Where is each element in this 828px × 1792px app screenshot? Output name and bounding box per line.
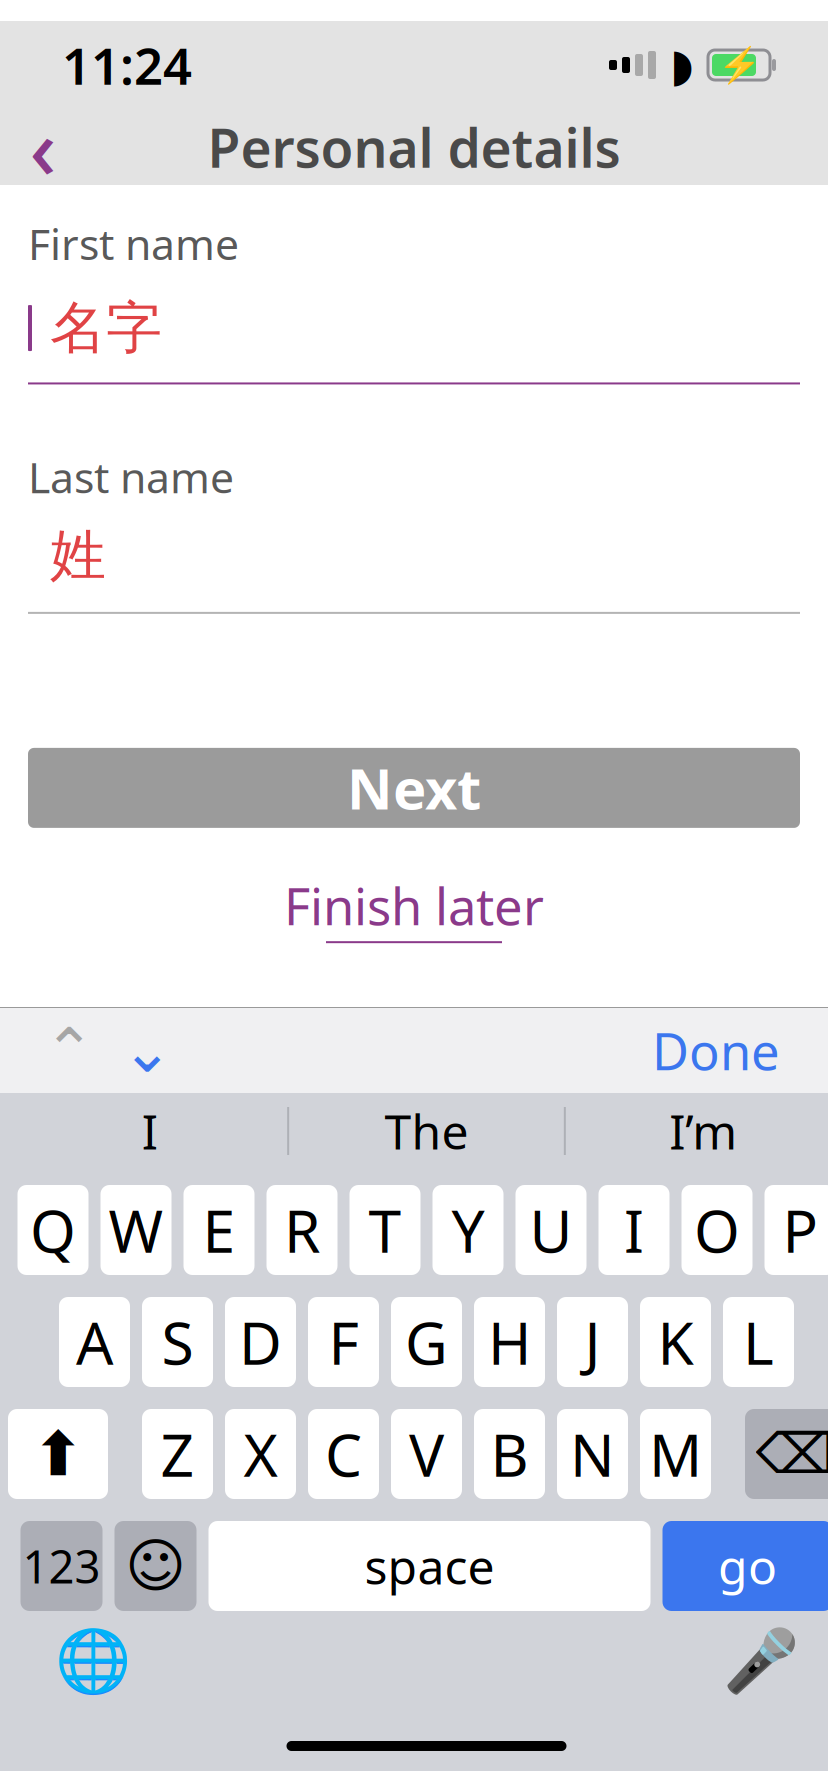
button[interactable]: I’m [566, 1093, 828, 1169]
staticText: Last name [28, 448, 234, 505]
staticText: ☺ [125, 1533, 186, 1599]
button[interactable]: Y [432, 1185, 503, 1275]
button[interactable]: J [557, 1297, 628, 1387]
staticText: ‹ [29, 92, 56, 202]
button[interactable]: S [142, 1297, 213, 1387]
button[interactable]: Finish later [0, 828, 828, 963]
button[interactable]: P [764, 1185, 828, 1275]
button[interactable]: Next field [108, 1011, 186, 1089]
button[interactable]: N [557, 1409, 628, 1499]
button[interactable]: F [308, 1297, 379, 1387]
button[interactable]: space [208, 1521, 650, 1611]
button[interactable]: 123 [20, 1521, 102, 1611]
button[interactable]: B [474, 1409, 545, 1499]
staticText: Finish later [284, 872, 544, 939]
staticText: O [694, 1191, 740, 1269]
staticText: R [284, 1191, 320, 1269]
staticText: 11:24 [62, 31, 192, 99]
button[interactable]: Next [28, 748, 800, 828]
button[interactable]: The [289, 1093, 564, 1169]
staticText: 🎤 [722, 1626, 798, 1696]
button[interactable]: W [100, 1185, 171, 1275]
staticText: D [239, 1303, 282, 1381]
button[interactable]: O [681, 1185, 752, 1275]
staticText: 名字 [50, 294, 162, 362]
staticText: Personal details [207, 112, 620, 182]
staticText: First name [28, 215, 239, 272]
staticText: J [584, 1303, 600, 1381]
button[interactable]: V [391, 1409, 462, 1499]
staticText: 🌐 [54, 1626, 130, 1696]
button[interactable]: Done [640, 1011, 792, 1089]
button[interactable]: G [391, 1297, 462, 1387]
staticText: ⌫ [755, 1422, 828, 1486]
staticText: T [368, 1191, 401, 1269]
staticText: K [657, 1303, 693, 1381]
button[interactable]: U [515, 1185, 586, 1275]
button[interactable]: L [723, 1297, 794, 1387]
staticText: The [384, 1099, 468, 1163]
button[interactable]: X [225, 1409, 296, 1499]
button[interactable]: Shift [8, 1409, 108, 1499]
staticText: ⌄ [121, 1016, 172, 1085]
button[interactable]: A [59, 1297, 130, 1387]
staticText: L [743, 1303, 774, 1381]
staticText: F [328, 1303, 358, 1381]
staticText: B [490, 1415, 528, 1493]
staticText: X [243, 1415, 277, 1493]
button[interactable]: Change keyboard [52, 1621, 132, 1701]
staticText: I’m [669, 1099, 737, 1163]
staticText: ⌃ [43, 1016, 94, 1085]
button[interactable]: D [225, 1297, 296, 1387]
staticText: 姓 [50, 521, 106, 590]
staticText: H [488, 1303, 531, 1381]
button[interactable]: go [662, 1521, 828, 1611]
button[interactable]: Dictation [720, 1621, 800, 1701]
staticText: Y [451, 1191, 484, 1269]
staticText: Done [652, 1017, 780, 1084]
staticText: A [76, 1303, 113, 1381]
button[interactable]: Q [17, 1185, 88, 1275]
staticText: W [108, 1191, 163, 1269]
staticText: Z [160, 1415, 194, 1493]
staticText: N [570, 1415, 615, 1493]
button[interactable]: C [308, 1409, 379, 1499]
staticText: Next [347, 751, 481, 825]
staticText: I [142, 1099, 158, 1163]
staticText: C [325, 1415, 362, 1493]
button[interactable]: E [183, 1185, 254, 1275]
staticText: ◗ [670, 39, 694, 91]
button[interactable]: Delete [745, 1409, 828, 1499]
staticText: E [202, 1191, 235, 1269]
staticText: V [409, 1415, 444, 1493]
button[interactable]: Back [0, 109, 86, 185]
button[interactable]: H [474, 1297, 545, 1387]
staticText: M [649, 1415, 702, 1493]
button[interactable]: I [12, 1093, 287, 1169]
staticText: G [405, 1303, 448, 1381]
staticText: S [161, 1303, 193, 1381]
staticText: Q [30, 1191, 76, 1269]
staticText: 123 [22, 1536, 100, 1596]
button[interactable]: Z [142, 1409, 213, 1499]
staticText: ⬆ [32, 1419, 83, 1489]
button[interactable]: M [640, 1409, 711, 1499]
button[interactable]: Previous field [30, 1011, 108, 1089]
staticText: go [718, 1534, 777, 1598]
button[interactable]: I [598, 1185, 669, 1275]
button[interactable]: Emoji [114, 1521, 196, 1611]
staticText: U [529, 1191, 572, 1269]
button[interactable]: R [266, 1185, 337, 1275]
staticText: P [782, 1191, 817, 1269]
staticText: ⚡ [717, 45, 760, 85]
staticText: space [364, 1534, 494, 1598]
button[interactable]: T [349, 1185, 420, 1275]
staticText: I [624, 1191, 644, 1269]
button[interactable]: K [640, 1297, 711, 1387]
